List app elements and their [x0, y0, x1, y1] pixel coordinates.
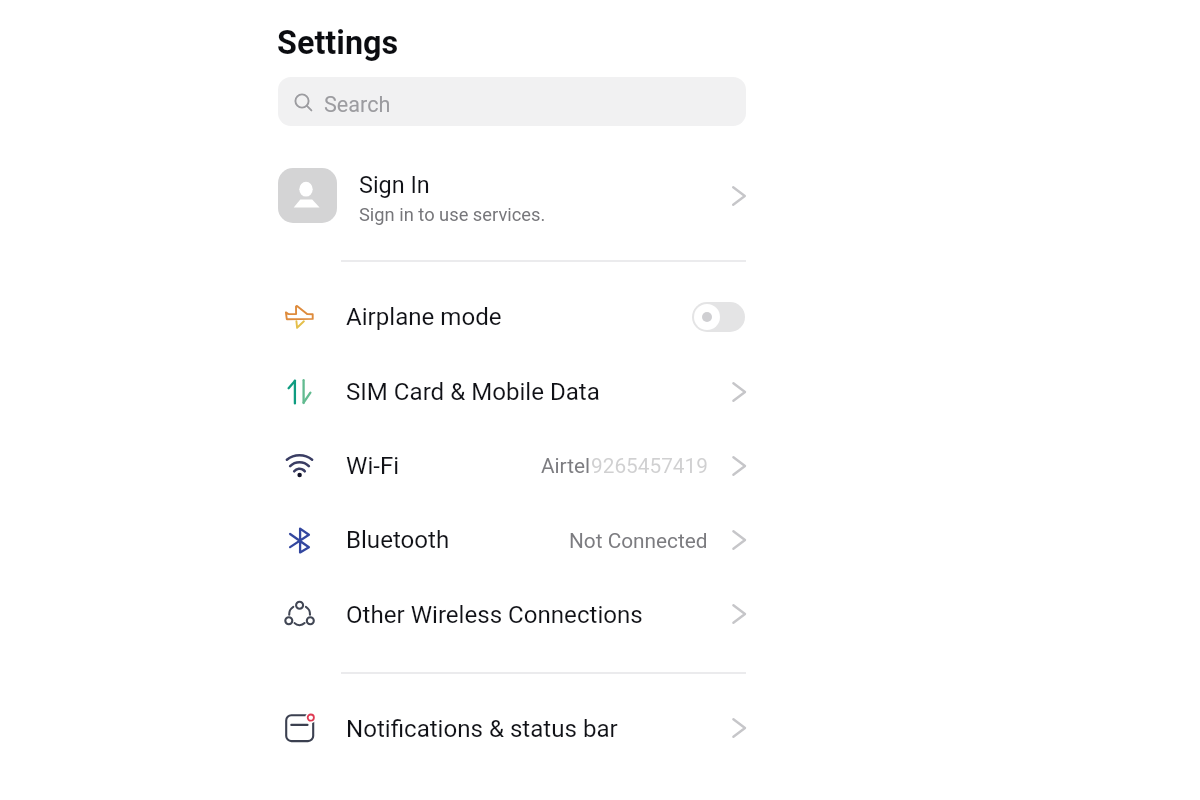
staticText: Sign in to use services. [359, 204, 546, 225]
staticText: Bluetooth [346, 526, 450, 554]
staticText: Other Wireless Connections [346, 601, 643, 629]
staticText: Airplane mode [346, 303, 502, 331]
staticText: Sign In [359, 171, 430, 198]
staticText: Notifications & status bar [346, 715, 618, 743]
staticText: Wi-Fi [346, 452, 400, 480]
staticText: Not Connected [569, 529, 708, 553]
button[interactable]: Other Wireless Connections [278, 577, 746, 651]
staticText: Airtel [541, 454, 591, 478]
staticText: 9265457419 [591, 454, 708, 478]
button[interactable]: Sign In [278, 156, 746, 238]
button[interactable]: Wi-Fi [278, 428, 746, 502]
staticText: Search [324, 92, 391, 117]
staticText: SIM Card & Mobile Data [346, 378, 600, 406]
button[interactable]: Search [278, 77, 746, 126]
button[interactable]: Airplane mode off [692, 302, 745, 332]
staticText: Settings [277, 24, 399, 62]
button[interactable]: Notifications & status bar [278, 691, 746, 765]
button[interactable]: Bluetooth [278, 503, 746, 577]
button[interactable]: Airplane mode [278, 279, 746, 353]
button[interactable]: SIM Card & Mobile Data [278, 354, 746, 428]
